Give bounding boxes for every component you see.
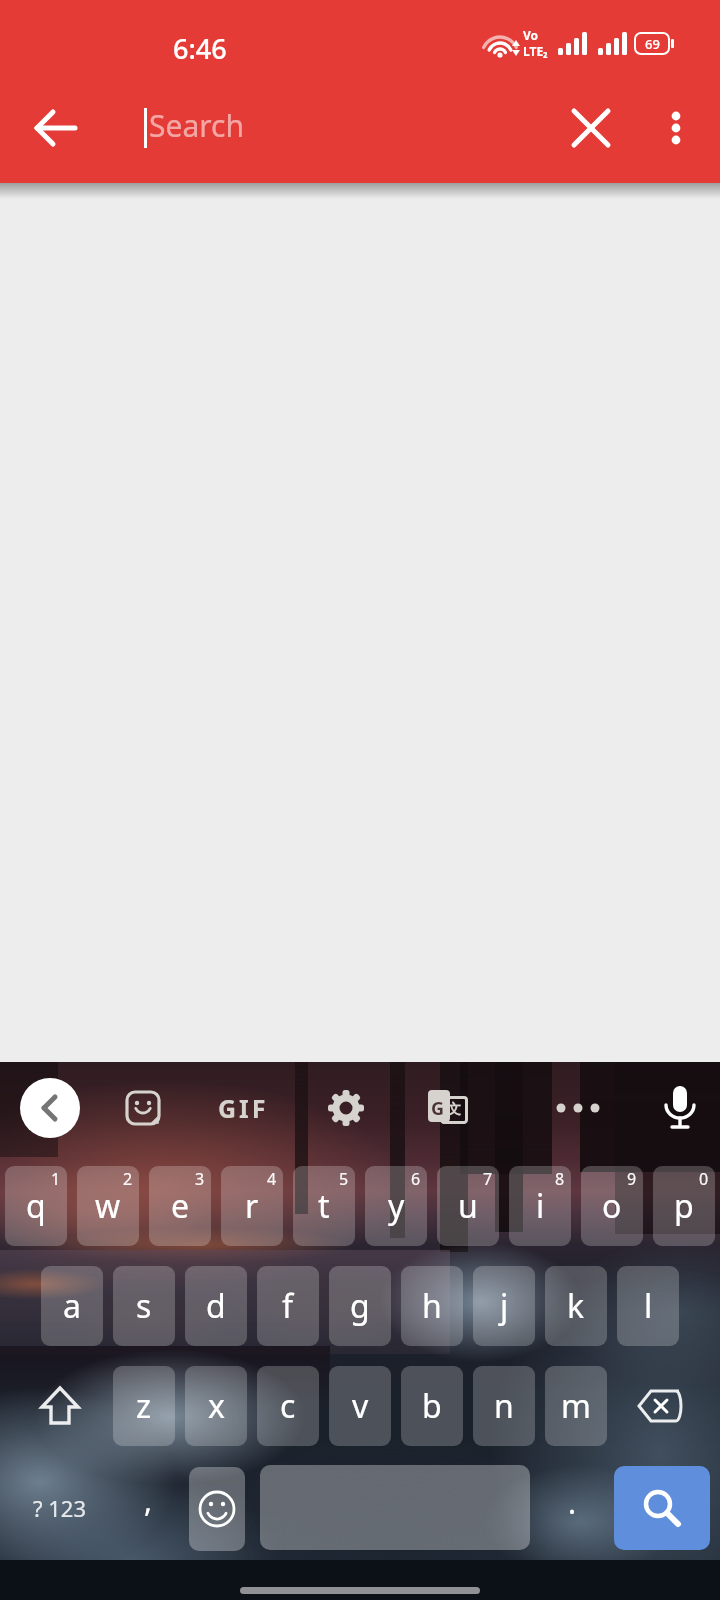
button[interactable] (555, 92, 627, 164)
staticText: . (568, 1482, 577, 1523)
button[interactable]: w (77, 1166, 139, 1246)
button[interactable]: n (473, 1366, 535, 1446)
staticText: 3 (195, 1168, 205, 1190)
staticText: 7 (483, 1168, 493, 1190)
staticText: LTE₂ (523, 43, 548, 59)
button[interactable]: c (257, 1366, 319, 1446)
button[interactable] (614, 1466, 710, 1550)
staticText: d (206, 1284, 226, 1328)
staticText: i (536, 1184, 545, 1228)
button[interactable]: k (545, 1266, 607, 1346)
staticText: s (136, 1284, 152, 1328)
button[interactable]: t (293, 1166, 355, 1246)
button[interactable]: h (401, 1266, 463, 1346)
staticText: e (171, 1184, 190, 1228)
staticText: y (388, 1184, 405, 1228)
button[interactable]: b (401, 1366, 463, 1446)
button[interactable]: l (617, 1266, 679, 1346)
staticText: 1 (51, 1168, 61, 1190)
button[interactable]: g (329, 1266, 391, 1346)
button[interactable]: r (221, 1166, 283, 1246)
button[interactable]: Search (144, 81, 444, 174)
staticText: w (95, 1184, 121, 1228)
button[interactable]: f (257, 1266, 319, 1346)
button[interactable]: m (545, 1366, 607, 1446)
staticText: a (63, 1284, 81, 1328)
staticText: j (500, 1284, 509, 1328)
button[interactable]: z (113, 1366, 175, 1446)
button[interactable]: e (149, 1166, 211, 1246)
staticText: 文 (447, 1101, 461, 1119)
staticText: x (208, 1384, 225, 1428)
button[interactable]: y (365, 1166, 427, 1246)
staticText: GIF (218, 1091, 269, 1125)
staticText: , (144, 1480, 153, 1521)
button[interactable]: ? 123 (18, 1466, 102, 1550)
button[interactable] (260, 1465, 530, 1550)
staticText: p (674, 1184, 694, 1228)
button[interactable]: s (113, 1266, 175, 1346)
button[interactable]: x (185, 1366, 247, 1446)
staticText: 9 (627, 1168, 637, 1190)
button[interactable]: a (41, 1266, 103, 1346)
button[interactable] (646, 92, 706, 164)
button[interactable]: o (581, 1166, 643, 1246)
button[interactable] (18, 1366, 102, 1446)
staticText: 5 (339, 1168, 349, 1190)
button[interactable] (618, 1366, 702, 1446)
button[interactable]: GIF (206, 1078, 280, 1138)
staticText: b (422, 1384, 442, 1428)
staticText: v (352, 1384, 369, 1428)
staticText: n (494, 1384, 514, 1428)
button[interactable] (316, 1078, 376, 1138)
staticText: G (431, 1096, 445, 1121)
staticText: l (644, 1284, 653, 1328)
button[interactable]: u (437, 1166, 499, 1246)
staticText: 6:46 (173, 30, 227, 67)
staticText: 0 (699, 1168, 709, 1190)
staticText: 69 (645, 35, 660, 53)
staticText: 8 (555, 1168, 565, 1190)
staticText: 4 (267, 1168, 277, 1190)
button[interactable] (548, 1078, 608, 1138)
staticText: o (602, 1184, 622, 1228)
button[interactable] (113, 1078, 173, 1138)
button[interactable]: v (329, 1366, 391, 1446)
button[interactable]: i (509, 1166, 571, 1246)
button[interactable] (189, 1467, 245, 1551)
staticText: 2 (123, 1168, 133, 1190)
button[interactable]: d (185, 1266, 247, 1346)
staticText: h (422, 1284, 442, 1328)
button[interactable]: , (120, 1466, 176, 1550)
staticText: f (282, 1284, 294, 1328)
staticText: t (318, 1184, 330, 1228)
button[interactable] (20, 92, 92, 164)
staticText: k (567, 1284, 585, 1328)
staticText: Vo (523, 27, 539, 43)
button[interactable]: q (5, 1166, 67, 1246)
staticText: q (26, 1184, 46, 1228)
button[interactable] (20, 1078, 80, 1138)
staticText: r (245, 1184, 259, 1228)
staticText: Search (149, 105, 244, 146)
button[interactable]: . (544, 1466, 600, 1550)
staticText: ? 123 (33, 1493, 87, 1523)
staticText: c (280, 1384, 296, 1428)
button[interactable]: j (473, 1266, 535, 1346)
staticText: g (350, 1284, 370, 1328)
staticText: u (458, 1184, 478, 1228)
button[interactable]: 文 (418, 1078, 478, 1138)
staticText: 6 (411, 1168, 421, 1190)
staticText: m (561, 1384, 591, 1428)
staticText: z (136, 1384, 152, 1428)
button[interactable] (650, 1078, 710, 1138)
button[interactable]: p (653, 1166, 715, 1246)
